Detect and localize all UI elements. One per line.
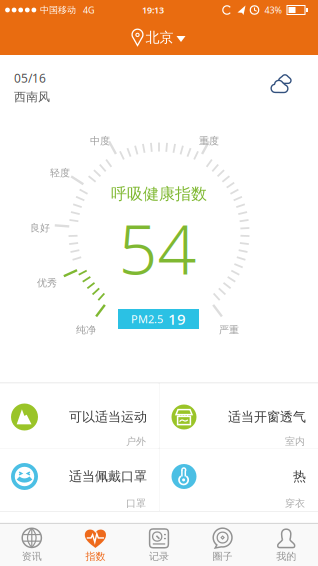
staticText: 严重 — [219, 324, 239, 336]
button[interactable]: 资讯 — [0, 524, 64, 566]
staticText: 适当开窗透气 — [228, 409, 306, 425]
staticText: 19 — [168, 309, 186, 329]
staticText: 轻度 — [50, 167, 70, 179]
button[interactable]: 可以适当运动 — [0, 383, 159, 448]
staticText: 良好 — [30, 222, 50, 234]
staticText: 户外 — [126, 435, 146, 448]
staticText: 05/16 — [14, 70, 46, 86]
staticText: 纯净 — [76, 324, 96, 336]
button[interactable]: 适当开窗透气 — [159, 383, 318, 448]
button[interactable]: 适当佩戴口罩 — [0, 448, 159, 511]
staticText: 西南风 — [14, 90, 50, 104]
button[interactable]: 圈子 — [191, 524, 254, 566]
staticText: 19:13 — [142, 4, 164, 16]
staticText: 54 — [118, 203, 196, 293]
staticText: 中国移动 — [40, 4, 76, 16]
button[interactable]: 我的 — [254, 524, 318, 566]
button[interactable]: 记录 — [127, 524, 191, 566]
staticText: 适当佩戴口罩 — [69, 468, 147, 484]
staticText: PM2.5 — [131, 312, 163, 326]
staticText: 4G — [83, 4, 95, 16]
button[interactable]: 热 — [159, 448, 318, 511]
staticText: 室内 — [285, 435, 305, 448]
button[interactable]: PM2.5 19 — [118, 309, 199, 329]
button[interactable]: 选择城市 北京 — [99, 22, 219, 54]
staticText: 可以适当运动 — [69, 409, 147, 425]
staticText: 资讯 — [22, 550, 42, 563]
staticText: 指数 — [85, 550, 105, 563]
staticText: 重度 — [199, 135, 219, 147]
staticText: 优秀 — [37, 277, 57, 289]
staticText: 中度 — [90, 135, 110, 147]
staticText: 圈子 — [213, 550, 233, 563]
staticText: 43% — [264, 4, 281, 16]
button[interactable]: 指数 — [64, 524, 127, 566]
staticText: 北京 — [145, 29, 173, 46]
staticText: 记录 — [149, 550, 169, 563]
staticText: 我的 — [276, 550, 296, 563]
staticText: 口罩 — [126, 497, 146, 510]
staticText: 呼吸健康指数 — [111, 184, 207, 204]
staticText: 穿衣 — [285, 497, 305, 510]
staticText: 热 — [293, 468, 306, 484]
